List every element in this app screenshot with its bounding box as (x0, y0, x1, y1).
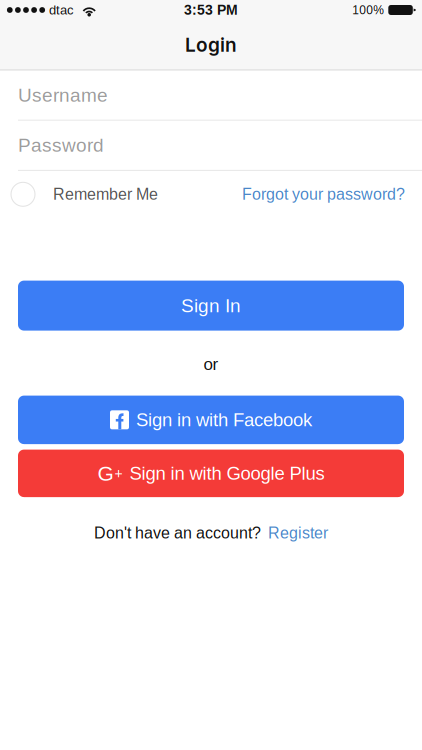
staticText: or (203, 355, 218, 374)
staticText: 100% (352, 3, 384, 17)
staticText: Username (18, 84, 108, 106)
button[interactable]: Forgot your password? (242, 171, 405, 218)
staticText: Login (185, 33, 237, 56)
staticText: 3:53 PM (184, 2, 238, 18)
staticText: Sign in with Facebook (136, 409, 312, 430)
staticText: + (114, 465, 122, 481)
button[interactable]: Remember Me (11, 171, 158, 218)
staticText: dtac (49, 3, 74, 17)
button[interactable]: Register (268, 524, 328, 542)
button[interactable]: Sign in with Facebook (18, 396, 404, 444)
button[interactable]: G (18, 450, 404, 497)
staticText: Sign In (181, 295, 241, 316)
staticText: Sign in with Google Plus (129, 463, 324, 484)
staticText: G (97, 462, 113, 485)
staticText: Forgot your password? (242, 185, 405, 203)
staticText: Don't have an account? (94, 524, 261, 542)
button[interactable]: Sign In (18, 281, 404, 331)
staticText: Password (18, 135, 104, 156)
staticText: Remember Me (53, 185, 158, 203)
staticText: Register (268, 524, 328, 542)
